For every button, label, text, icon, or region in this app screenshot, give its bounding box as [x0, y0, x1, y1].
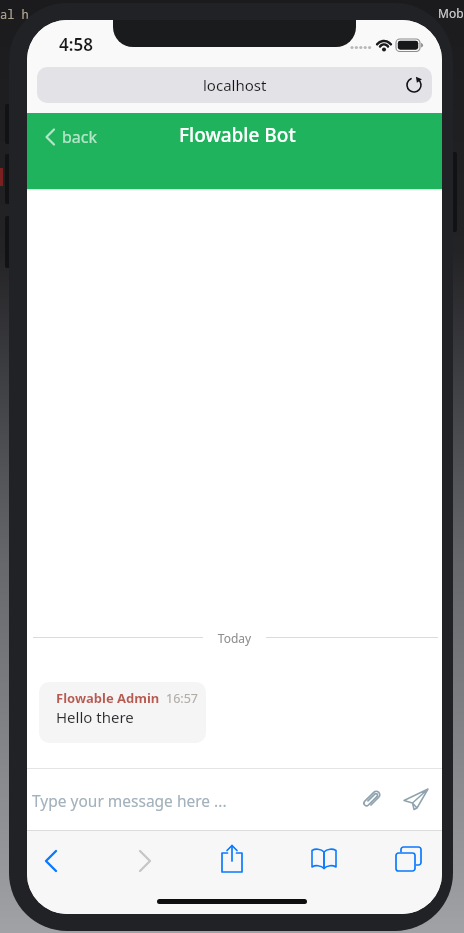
staticText: Flowable Admin — [56, 689, 160, 707]
staticText: localhost — [203, 75, 267, 95]
button[interactable]: Type your message here ... — [27, 769, 442, 830]
button[interactable] — [402, 785, 430, 813]
staticText: Hello there — [56, 707, 134, 727]
button[interactable]: Flowable Admin — [39, 682, 206, 743]
staticText: Type your message here ... — [32, 790, 227, 811]
button[interactable] — [218, 844, 246, 874]
button[interactable] — [359, 786, 385, 812]
staticText: 4:58 — [41, 33, 111, 56]
button[interactable]: back — [43, 121, 98, 153]
button[interactable]: localhost — [37, 67, 432, 103]
button[interactable] — [395, 847, 423, 875]
staticText: al h — [0, 6, 29, 22]
button[interactable] — [310, 847, 338, 873]
staticText: Today — [182, 630, 287, 646]
staticText: 16:57 — [166, 690, 198, 707]
button[interactable] — [40, 849, 64, 873]
staticText: Flowable Bot — [179, 122, 296, 148]
staticText: Mob — [438, 5, 464, 21]
button[interactable] — [132, 849, 156, 873]
staticText: back — [62, 126, 98, 148]
